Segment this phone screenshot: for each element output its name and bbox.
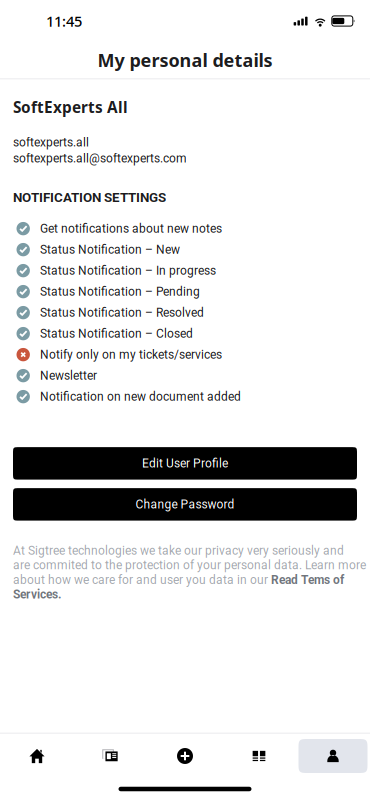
button[interactable]: Status Notification – New: [0, 239, 370, 260]
staticText: Notify only on my tickets/services: [40, 348, 222, 362]
button[interactable]: News: [74, 734, 148, 778]
staticText: 11:45: [46, 11, 82, 31]
staticText: Newsletter: [40, 369, 97, 383]
button[interactable]: Profile: [296, 734, 370, 778]
button[interactable]: Status Notification – Closed: [0, 323, 370, 344]
staticText: Change Password: [135, 497, 234, 511]
staticText: are commited to the protection of your p…: [13, 558, 366, 572]
staticText: softexperts.all@softexperts.com: [13, 151, 187, 165]
staticText: Notification on new document added: [40, 390, 241, 404]
button[interactable]: Status Notification – Pending: [0, 281, 370, 302]
staticText: Read Tems of: [271, 573, 344, 587]
staticText: Edit User Profile: [142, 456, 228, 470]
staticText: about how we care for and user you data …: [13, 573, 271, 587]
button[interactable]: Get notifications about new notes: [0, 218, 370, 239]
button[interactable]: Notify only on my tickets/services: [0, 344, 370, 365]
button[interactable]: Home: [0, 734, 74, 778]
staticText: My personal details: [97, 48, 272, 72]
button[interactable]: Add: [148, 734, 222, 778]
button[interactable]: Status Notification – In progress: [0, 260, 370, 281]
button[interactable]: Edit User Profile: [13, 447, 357, 480]
staticText: Status Notification – Closed: [40, 327, 193, 341]
staticText: Get notifications about new notes: [40, 222, 222, 236]
staticText: Status Notification – New: [40, 243, 180, 257]
staticText: NOTIFICATION SETTINGS: [13, 189, 166, 205]
button[interactable]: Change Password: [13, 488, 357, 521]
button[interactable]: Dashboard: [222, 734, 296, 778]
staticText: Status Notification – Resolved: [40, 306, 204, 320]
staticText: softexperts.all: [13, 135, 89, 149]
staticText: At Sigtree technologies we take our priv…: [13, 544, 344, 558]
staticText: Status Notification – Pending: [40, 285, 200, 299]
button[interactable]: Notification on new document added: [0, 386, 370, 407]
staticText: Status Notification – In progress: [40, 264, 216, 278]
staticText: Services.: [13, 587, 61, 601]
button[interactable]: Newsletter: [0, 365, 370, 386]
button[interactable]: Status Notification – Resolved: [0, 302, 370, 323]
staticText: SoftExperts All: [13, 96, 128, 117]
